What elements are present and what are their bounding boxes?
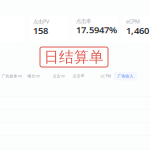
staticText: 广告媒体PV: [1, 73, 21, 79]
button[interactable]: 广告收入: [114, 72, 137, 80]
staticText: 158: [33, 24, 48, 36]
staticText: 点击率: [72, 73, 84, 78]
staticText: 点击PV: [33, 18, 49, 25]
button[interactable]: 曝光PV: [26, 72, 41, 80]
staticText: 日结算单: [44, 48, 104, 66]
staticText: 广告收入: [117, 74, 133, 79]
button[interactable]: 点击率: [71, 72, 86, 80]
staticText: eCPM: [126, 18, 140, 25]
staticText: 曝光PV: [27, 73, 39, 79]
staticText: 点击PV: [52, 73, 64, 79]
staticText: 1,460: [126, 24, 149, 36]
button[interactable]: 日结算单: [40, 47, 108, 67]
button[interactable]: 广告媒体PV: [0, 72, 23, 80]
button[interactable]: 点击PV: [51, 72, 66, 80]
button[interactable]: eCPM: [99, 72, 113, 80]
staticText: 17.5947%: [76, 24, 117, 36]
staticText: eCPM: [100, 73, 111, 79]
staticText: 点击率: [76, 18, 91, 25]
